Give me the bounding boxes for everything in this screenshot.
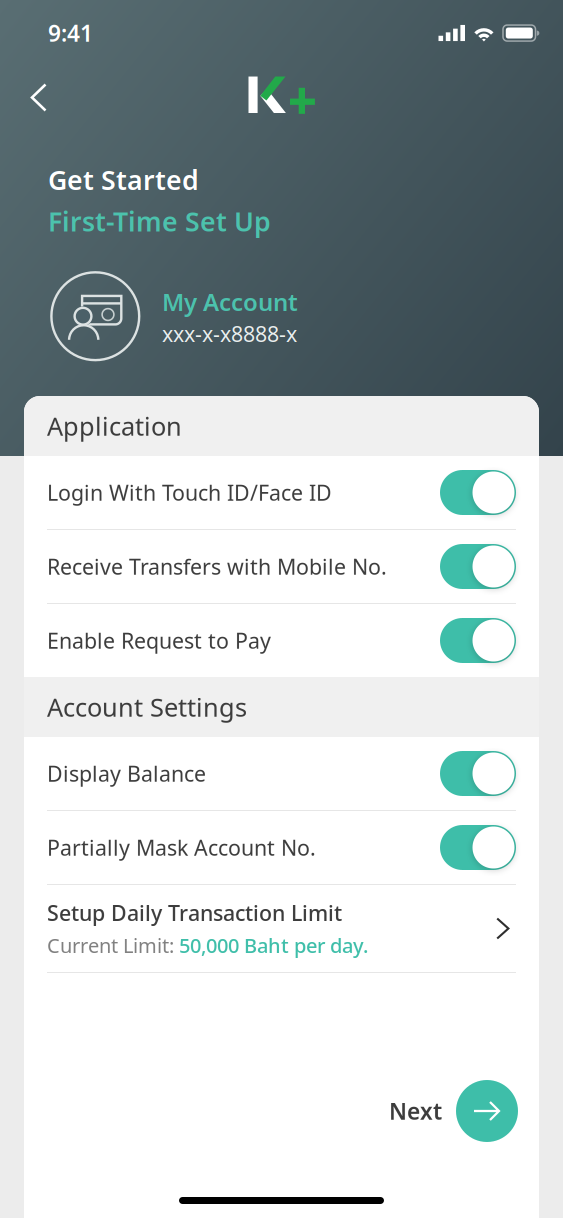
staticText: Application [47,409,182,443]
staticText: Get Started [48,162,199,197]
staticText: xxx-x-x8888-x [162,320,297,348]
staticText: Setup Daily Transaction Limit [47,899,342,927]
staticText: 9:41 [48,18,93,48]
staticText: Display Balance [47,759,206,788]
staticText: Account Settings [47,690,247,724]
button[interactable]: Setup Daily Transaction Limit [24,885,539,972]
button[interactable]: Login With Touch ID/Face ID [24,456,539,529]
button[interactable]: Partially Mask Account No. [24,811,539,884]
staticText: Receive Transfers with Mobile No. [47,552,387,581]
staticText: 50,000 Baht per day. [179,932,368,958]
staticText: Enable Request to Pay [47,626,271,655]
button[interactable]: Display Balance [24,737,539,810]
staticText: Login With Touch ID/Face ID [47,478,332,507]
button[interactable]: Receive Transfers with Mobile No. [24,530,539,603]
staticText: Next [389,1096,442,1126]
button[interactable]: Next [389,1080,539,1218]
button[interactable]: Enable Request to Pay [24,604,539,677]
staticText: Current Limit: [47,932,179,958]
staticText: First-Time Set Up [48,203,271,239]
staticText: My Account [162,286,298,318]
staticText: Partially Mask Account No. [47,833,316,862]
button[interactable]: Back [15,72,62,122]
